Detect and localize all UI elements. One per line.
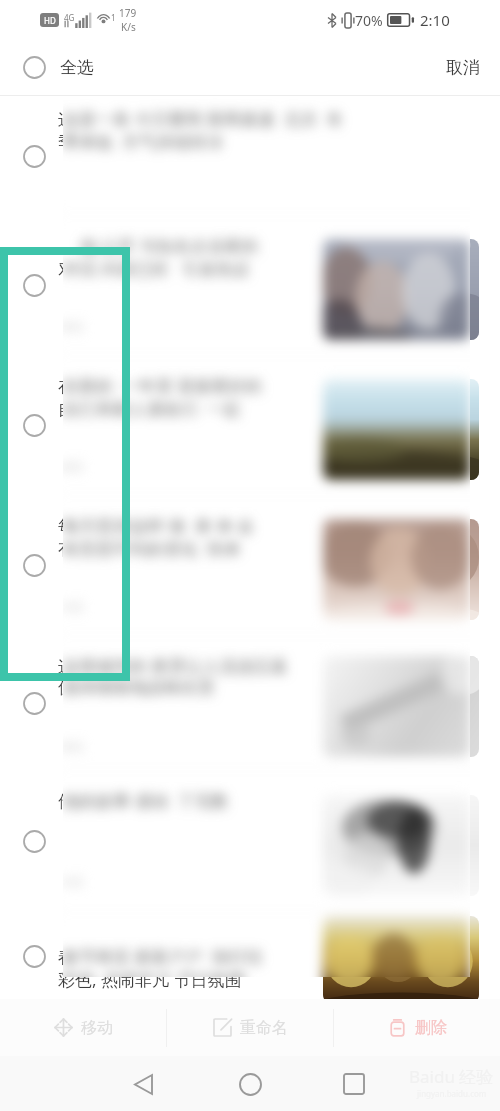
button[interactable]: Select item [0,215,500,355]
staticText: 有意想不到的变化 快来 [62,537,241,560]
staticText: 这座城市的 夜景让人流连忘返 [62,654,288,677]
button[interactable]: 全选 [0,40,110,95]
staticText: 对话 内容已经 引发热议 [58,257,246,280]
staticText: 这是一条 今日要闻 新闻速递 北京 冬 [58,107,340,130]
other: Select item [22,691,46,715]
staticText: 全选 [60,57,94,78]
staticText: 自己和家人朋友们 一起 [58,397,237,420]
button[interactable]: 重命名 [167,999,333,1056]
staticText: 对话 内容已经 引发热议 [58,257,246,280]
staticText: 在新的 一年里 迎接更好的 [62,374,263,397]
staticText: 删除 [415,1018,447,1038]
staticText: 每天坚持这样 做 身 体 会 [58,514,251,537]
staticText: 他 公开 与知名企业家的 [58,234,255,257]
staticText: 季来临 天气持续转冷 [62,130,224,153]
staticText: 自己和家人朋友们 一起 [58,397,237,420]
staticText: 每天坚持这样 做 身 体 会 [58,514,251,537]
staticText: 移动 [81,1018,113,1038]
staticText: 彩色, 热闹非凡 节日氛围 [58,968,242,991]
staticText: 值得细细地品味欣赏 [58,677,211,698]
button[interactable]: Back [118,1059,168,1109]
button[interactable]: Select item [0,635,500,770]
staticText: 春节将至 家家户户 张灯结 [58,945,259,968]
staticText: 70% [355,11,383,30]
staticText: 他 公开 与知名企业家的 [58,234,255,257]
other: Select item [22,829,46,853]
staticText: 彩色, 热闹非凡 节日氛围 [58,968,242,991]
staticText: 他 公开 与知名企业家的 [58,234,255,257]
staticText: 有意想不到的变化 快来 [58,537,237,560]
staticText: 彩色, 热闹非凡 节日氛围 [58,968,242,991]
staticText: 这座城市的 夜景让人流连忘返 [58,654,284,677]
staticText: K/s [121,20,136,34]
button[interactable]: Select item [0,770,500,912]
staticText: 他的故事 感动 了无数 [58,789,225,812]
staticText: 春节将至 家家户户 张灯结 [58,945,259,968]
other: Select item [22,553,46,577]
staticText: 有意想不到的变化 快来 [58,537,237,560]
staticText: 每天坚持这样 做 身 体 会 [58,514,251,537]
staticText: 对话 内容已经 引发热议 [62,257,250,280]
staticText: 4G [64,12,75,23]
staticText: 这座城市的 夜景让人流连忘返 [58,654,284,677]
button[interactable]: Select item [0,355,500,495]
staticText: 这座城市的 夜景让人流连忘返 [58,654,284,677]
staticText: 他的故事 感动 了无数 [58,789,225,812]
staticText: 春节将至 家家户户 张灯结 [58,945,259,968]
staticText: 2:10 [420,10,450,30]
staticText: 值得细细地品味欣赏 [62,677,215,698]
staticText: 彩色, 热闹非凡 节日氛围 [62,968,246,991]
staticText: 春节将至 家家户户 张灯结 [62,945,263,968]
staticText: 取消 [446,57,480,78]
staticText: 自己和家人朋友们 一起 [58,397,237,420]
button[interactable]: 移动 [0,999,166,1056]
staticText: 179 [119,6,137,20]
staticText: 这是一条 今日要闻 新闻速递 北京 冬 [58,107,340,130]
staticText: 他 公开 与知名企业家的 [62,234,259,257]
other: Select item [22,944,46,968]
staticText: 有意想不到的变化 快来 [58,537,237,560]
staticText: 值得细细地品味欣赏 [58,677,211,698]
staticText: 在新的 一年里 迎接更好的 [58,374,259,397]
staticText: 1 [111,12,116,23]
button[interactable]: Home [225,1059,275,1109]
staticText: 他的故事 感动 了无数 [62,789,229,812]
staticText: 季来临 天气持续转冷 [58,130,220,153]
button[interactable]: Select item [0,495,500,635]
button[interactable]: Recents [329,1059,379,1109]
button[interactable]: 取消 [426,40,500,95]
other: Select item [22,413,46,437]
staticText: 重命名 [240,1018,288,1038]
staticText: 这是一条 今日要闻 新闻速递 北京 冬 [58,107,340,130]
staticText: 值得细细地品味欣赏 [58,677,211,698]
staticText: 在新的 一年里 迎接更好的 [58,374,259,397]
other: Select item [22,144,46,168]
other: Select item [22,273,46,297]
button[interactable]: Select item [0,912,500,999]
staticText: 每天坚持这样 做 身 体 会 [62,514,255,537]
staticText: HD [44,15,56,26]
button[interactable]: Select item [0,96,500,215]
staticText: 对话 内容已经 引发热议 [58,257,246,280]
button[interactable]: 删除 [334,999,500,1056]
staticText: 在新的 一年里 迎接更好的 [58,374,259,397]
staticText: 季来临 天气持续转冷 [58,130,220,153]
staticText: 季来临 天气持续转冷 [58,130,220,153]
staticText: 这是一条 今日要闻 新闻速递 北京 冬 [62,107,344,130]
staticText: 自己和家人朋友们 一起 [62,397,241,420]
staticText: 他的故事 感动 了无数 [58,789,225,812]
